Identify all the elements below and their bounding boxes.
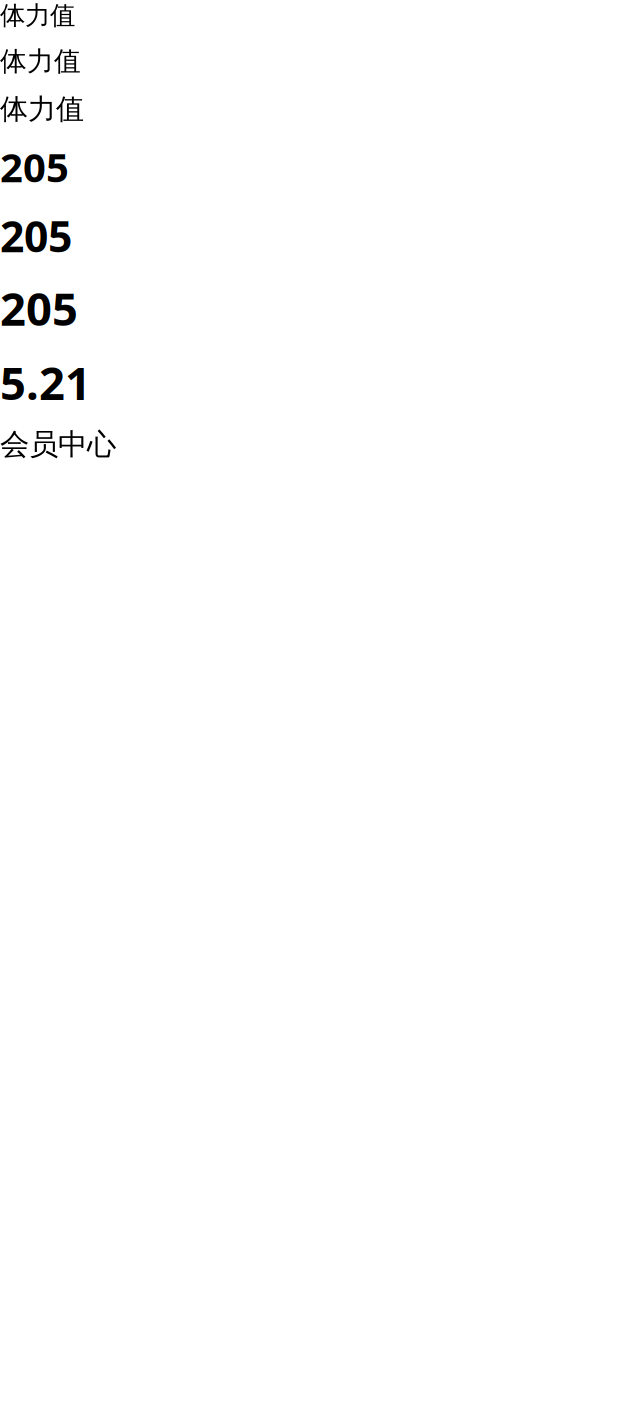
staticText: 205 — [0, 207, 72, 264]
staticText: 205 — [0, 278, 78, 338]
staticText: 体力值 — [0, 0, 75, 31]
staticText: 会员中心 — [0, 426, 116, 462]
staticText: 5.21 — [0, 352, 91, 412]
staticText: 205 — [0, 140, 69, 193]
staticText: 体力值 — [0, 45, 81, 78]
staticText: 体力值 — [0, 92, 84, 126]
